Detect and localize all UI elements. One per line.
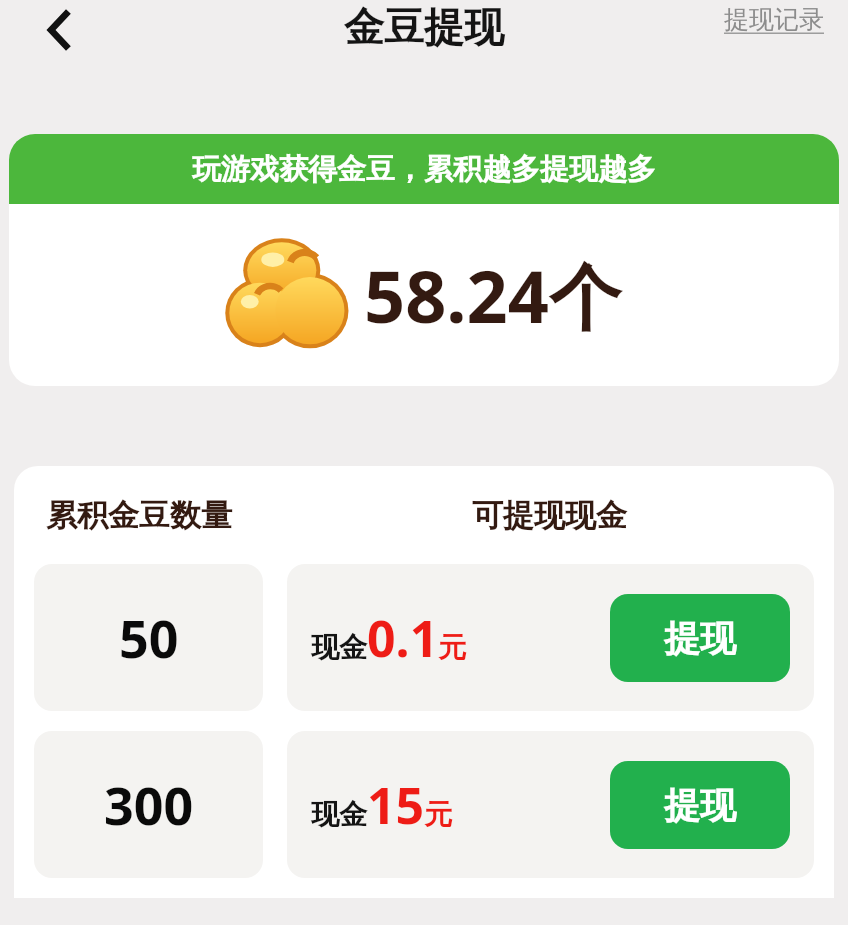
staticText: 300: [104, 769, 194, 840]
staticText: 提现: [664, 616, 736, 661]
staticText: 58.24个: [364, 246, 621, 344]
button[interactable]: 300: [34, 731, 263, 878]
staticText: 50: [119, 602, 179, 673]
button[interactable]: 提现: [610, 594, 790, 682]
staticText: 累积金豆数量: [46, 496, 232, 535]
staticText: 玩游戏获得金豆，累积越多提现越多: [192, 151, 656, 188]
button[interactable]: 50: [34, 564, 263, 711]
staticText: 现金15元: [311, 771, 453, 839]
button[interactable]: 提现记录: [724, 4, 824, 35]
staticText: 提现记录: [724, 4, 824, 35]
button[interactable]: Back: [28, 0, 92, 60]
button[interactable]: 提现: [610, 761, 790, 849]
staticText: 可提现现金: [472, 496, 627, 535]
staticText: 金豆提现: [344, 2, 504, 52]
staticText: 现金0.1元: [311, 604, 467, 672]
staticText: 提现: [664, 783, 736, 828]
